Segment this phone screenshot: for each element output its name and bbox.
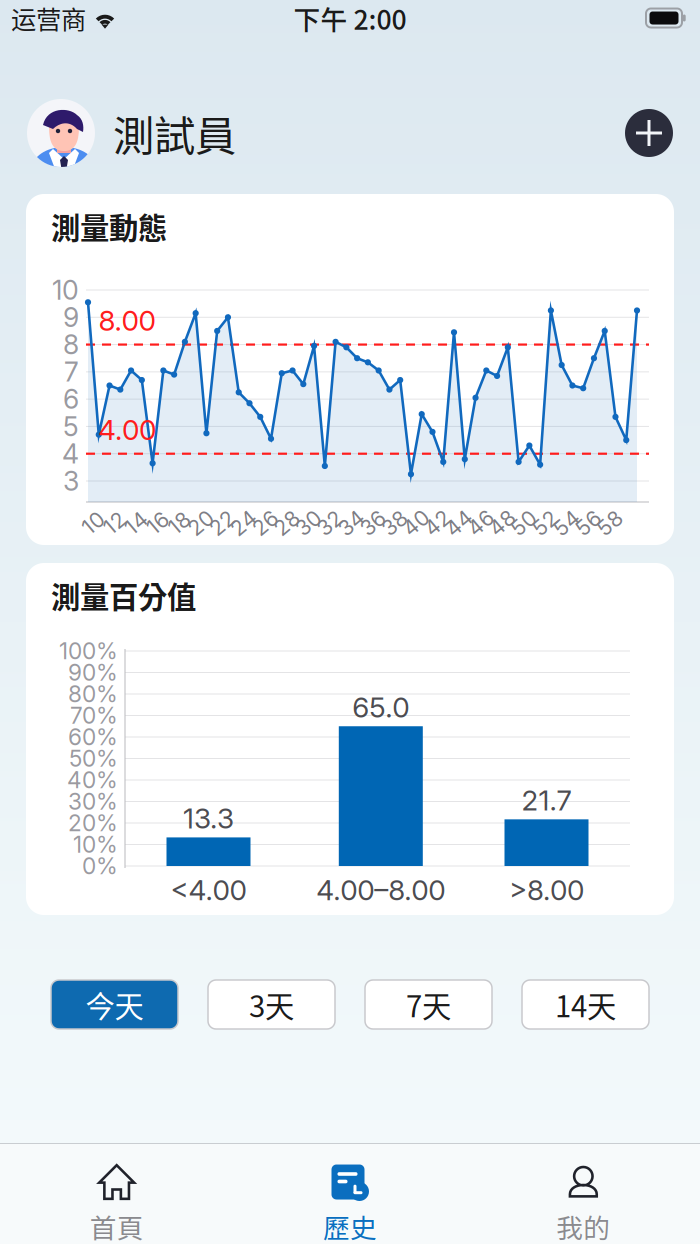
staticText: 下午 2:00	[293, 0, 406, 37]
staticText: 4.00–8.00	[316, 873, 445, 907]
staticText: 3	[63, 465, 79, 497]
staticText: 28	[274, 510, 300, 536]
staticText: 38	[381, 510, 407, 536]
staticText: 12	[103, 510, 125, 536]
staticText: 測量百分值	[51, 574, 196, 616]
button[interactable]: 7天	[365, 980, 492, 1029]
button[interactable]: 首頁	[0, 1144, 233, 1244]
staticText: 5	[63, 410, 79, 443]
staticText: 3天	[249, 983, 294, 1026]
staticText: 58	[597, 510, 623, 536]
staticText: 32	[317, 510, 343, 536]
staticText: 80%	[68, 680, 118, 708]
staticText: 6	[63, 383, 79, 415]
staticText: 34	[338, 510, 365, 536]
staticText: 60%	[68, 723, 118, 751]
staticText: 7	[64, 356, 79, 388]
staticText: 20%	[68, 809, 118, 837]
staticText: 48	[489, 510, 516, 536]
staticText: 10%	[73, 831, 118, 858]
staticText: 9	[63, 301, 79, 333]
staticText: 測量動態	[51, 205, 167, 247]
staticText: 100%	[59, 637, 118, 665]
staticText: 4.00	[98, 413, 156, 447]
staticText: 54	[553, 510, 580, 536]
staticText: 40%	[67, 766, 118, 794]
staticText: 21.7	[521, 783, 571, 817]
staticText: 56	[575, 510, 601, 536]
staticText: 30%	[68, 788, 118, 815]
button[interactable]: 我的	[467, 1144, 700, 1244]
staticText: <4.00	[170, 873, 246, 907]
staticText: 42	[424, 510, 451, 536]
staticText: 今天	[85, 983, 143, 1026]
staticText: 20	[188, 510, 214, 536]
staticText: 13.3	[183, 801, 234, 835]
staticText: 44	[445, 510, 473, 536]
staticText: 測試員	[113, 103, 236, 163]
staticText: 4	[62, 438, 79, 470]
staticText: 10	[82, 510, 104, 536]
staticText: 首頁	[90, 1207, 144, 1244]
button[interactable]: 歷史	[233, 1144, 467, 1244]
staticText: 70%	[70, 702, 118, 729]
staticText: 22	[209, 510, 235, 536]
staticText: 14	[125, 510, 148, 536]
staticText: 14天	[555, 983, 616, 1026]
staticText: 我的	[556, 1207, 610, 1244]
staticText: 8.00	[98, 304, 155, 337]
staticText: 10	[52, 274, 79, 306]
staticText: 运营商	[11, 0, 86, 36]
staticText: 46	[467, 510, 494, 536]
staticText: 歷史	[323, 1207, 377, 1244]
staticText: 40	[402, 510, 429, 536]
staticText: 26	[252, 510, 278, 536]
staticText: 0%	[82, 852, 118, 880]
button[interactable]: 今天	[51, 980, 178, 1029]
staticText: 50%	[69, 745, 118, 772]
staticText: 50	[511, 510, 537, 536]
staticText: 30	[295, 510, 321, 536]
staticText: 8	[63, 328, 79, 361]
staticText: >8.00	[509, 873, 584, 907]
staticText: 65.0	[352, 690, 409, 724]
staticText: 52	[532, 510, 558, 536]
button[interactable]: 14天	[522, 980, 649, 1029]
staticText: 24	[230, 510, 257, 536]
staticText: 16	[147, 510, 169, 536]
staticText: 36	[360, 510, 386, 536]
staticText: 90%	[68, 659, 118, 686]
button[interactable]: Add measurement	[625, 109, 673, 157]
button[interactable]: 3天	[208, 980, 335, 1029]
staticText: 7天	[406, 983, 451, 1026]
staticText: 18	[168, 510, 190, 536]
